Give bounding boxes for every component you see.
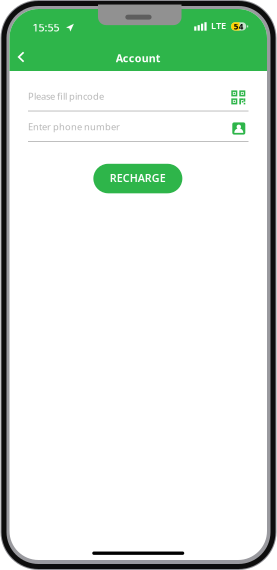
button[interactable]: RECHARGE <box>93 164 182 193</box>
staticText: Please fill pincode <box>28 90 104 102</box>
staticText: Account <box>116 51 161 65</box>
staticText: LTE <box>211 19 226 32</box>
button[interactable]: Back <box>8 44 34 70</box>
staticText: RECHARGE <box>110 171 166 185</box>
staticText: 54 <box>234 21 244 32</box>
button[interactable]: Choose contact <box>229 119 249 138</box>
staticText: 15:55 <box>32 20 59 34</box>
staticText: Enter phone number <box>28 120 120 133</box>
button[interactable]: Scan QR code <box>228 88 248 107</box>
